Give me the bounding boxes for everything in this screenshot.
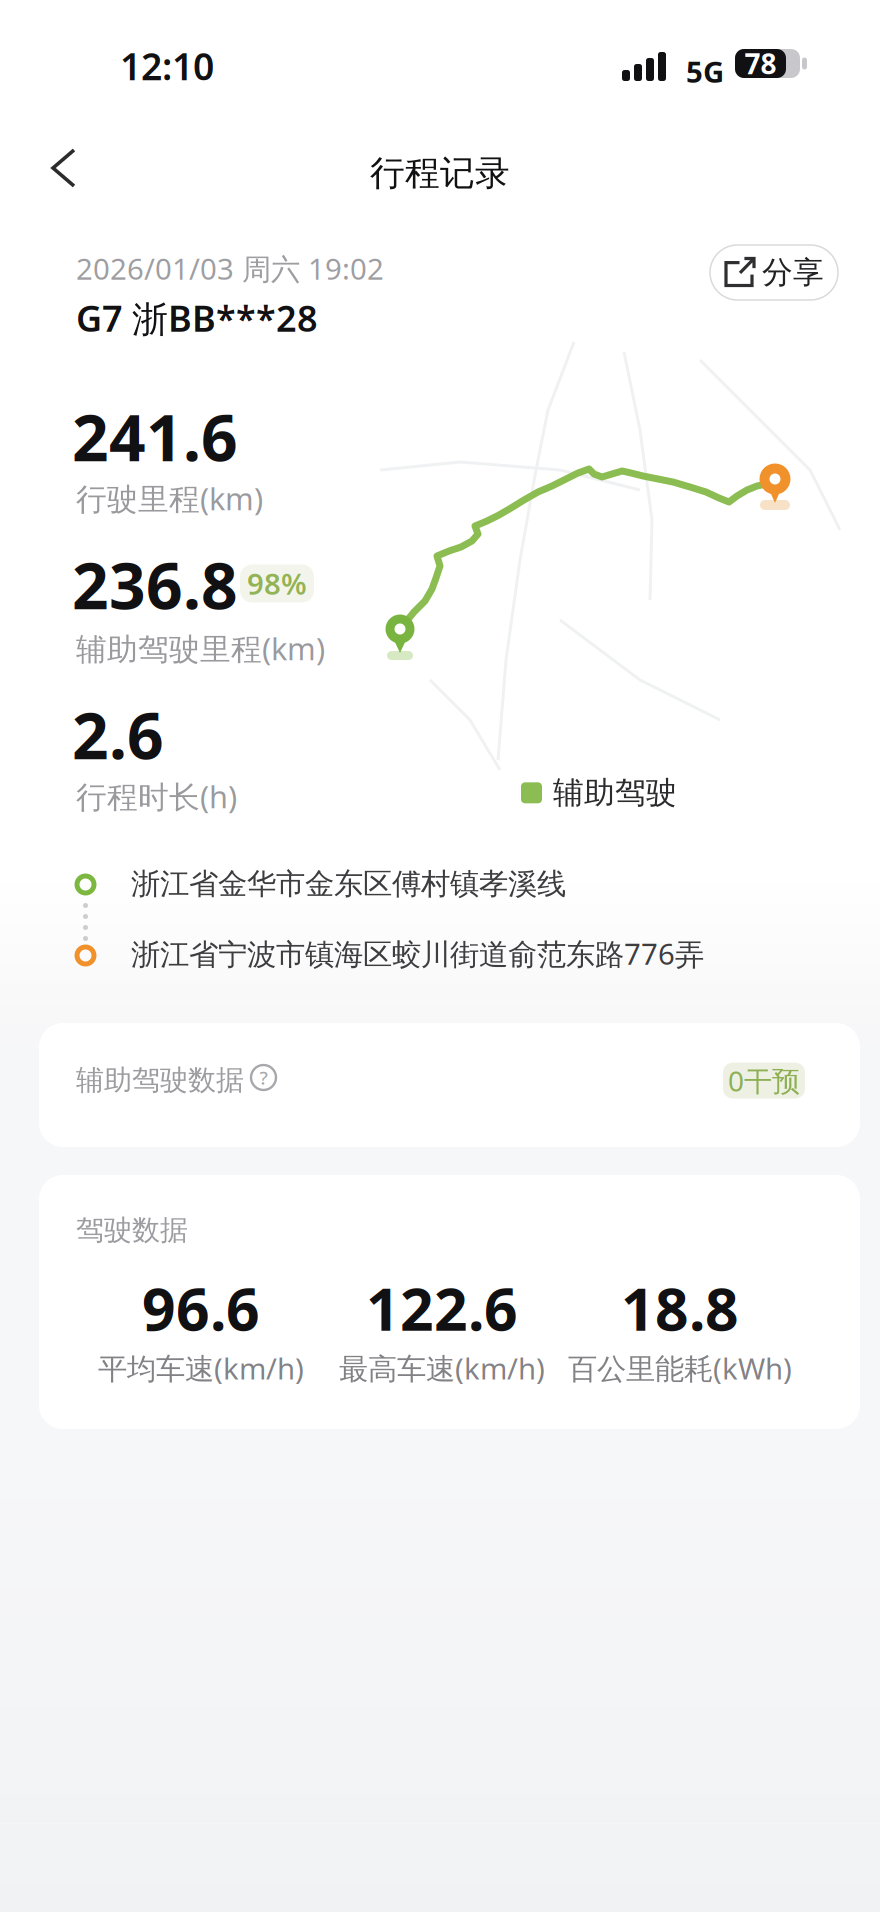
staticText: 12:10	[120, 41, 214, 91]
staticText: 驾驶数据	[76, 1213, 188, 1247]
staticText: 2026/01/03 周六 19:02	[76, 249, 384, 288]
staticText: 5G	[686, 52, 724, 91]
staticText: 行程记录	[370, 152, 510, 195]
staticText: 辅助驾驶数据	[76, 1063, 244, 1097]
staticText: 122.6	[366, 1269, 518, 1347]
staticText: 96.6	[142, 1269, 260, 1347]
staticText: ?	[259, 1065, 267, 1090]
staticText: 浙江省宁波市镇海区蛟川街道俞范东路776弄	[131, 934, 704, 973]
staticText: 辅助驾驶	[553, 774, 677, 812]
button[interactable]: Back	[0, 144, 104, 192]
staticText: 18.8	[621, 1269, 739, 1347]
staticText: 241.6	[72, 394, 238, 479]
staticText: 行程时长(h)	[76, 776, 237, 817]
staticText: 平均车速(km/h)	[98, 1348, 304, 1387]
staticText: 辅助驾驶里程(km)	[76, 628, 325, 669]
staticText: 分享	[762, 254, 824, 291]
staticText: 最高车速(km/h)	[339, 1348, 545, 1387]
staticText: 78	[744, 45, 776, 82]
staticText: 浙江省金华市金东区傅村镇孝溪线	[131, 866, 566, 902]
staticText: 百公里能耗(kWh)	[568, 1348, 792, 1387]
staticText: 0干预	[728, 1062, 800, 1099]
staticText: 行驶里程(km)	[76, 478, 263, 519]
button[interactable]: 分享	[710, 245, 838, 300]
staticText: 236.8	[72, 542, 238, 627]
staticText: G7 浙BB***28	[76, 294, 318, 342]
staticText: 2.6	[72, 692, 164, 777]
staticText: 98%	[247, 564, 307, 603]
button[interactable]: Help	[251, 1065, 276, 1090]
